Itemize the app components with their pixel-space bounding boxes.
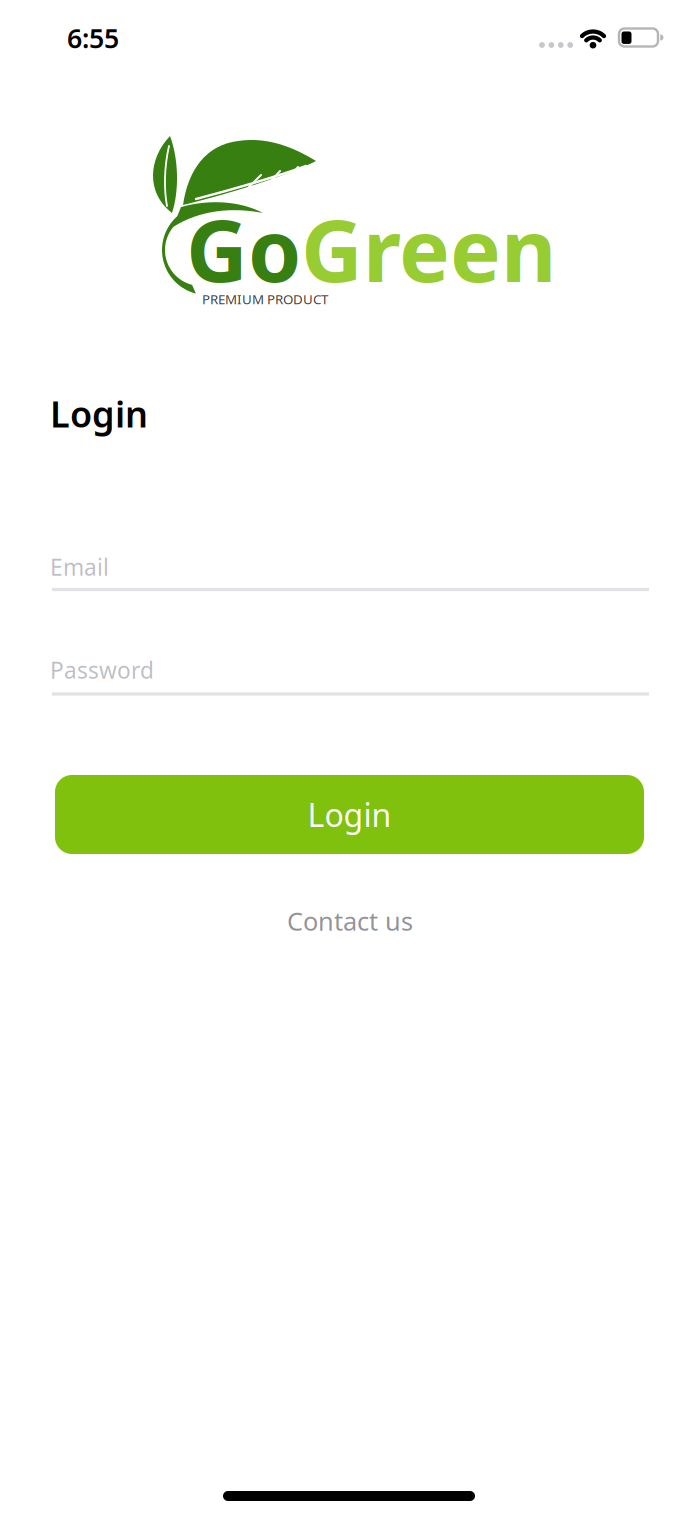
button[interactable]: Password bbox=[0, 646, 700, 702]
staticText: PREMIUM PRODUCT bbox=[202, 290, 328, 308]
staticText: Login bbox=[307, 793, 391, 836]
staticText: Go bbox=[186, 192, 301, 306]
staticText: Login bbox=[50, 390, 148, 437]
staticText: Password bbox=[50, 655, 154, 685]
staticText: Email bbox=[50, 552, 109, 582]
button[interactable]: Email bbox=[0, 543, 700, 599]
staticText: Green bbox=[301, 192, 556, 306]
button[interactable]: Login bbox=[55, 775, 644, 854]
button[interactable]: Contact us bbox=[287, 904, 413, 938]
staticText: Contact us bbox=[287, 904, 413, 938]
staticText: 6:55 bbox=[67, 20, 119, 56]
